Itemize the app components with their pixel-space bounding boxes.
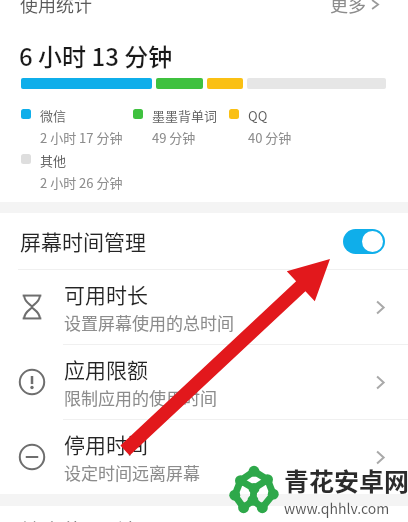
staticText: 40 分钟 — [248, 128, 292, 147]
staticText: 设定时间远离屏幕 — [64, 460, 200, 485]
staticText: 应用限额 — [64, 354, 148, 384]
staticText: 使用统计 — [20, 0, 92, 17]
staticText: 可用时长 — [64, 279, 148, 309]
staticText: 停用时间 — [64, 429, 148, 459]
button[interactable]: 更多 — [330, 0, 380, 17]
staticText: QQ — [248, 106, 268, 125]
staticText: 墨墨背单词 — [152, 106, 218, 125]
button[interactable]: 停用时间 — [0, 420, 408, 494]
staticText: 微信 — [40, 106, 67, 125]
staticText: 其他 — [40, 151, 67, 170]
button[interactable]: 应用限额 — [0, 345, 408, 419]
button[interactable]: Screen time management toggle — [343, 229, 385, 254]
staticText: 更多 — [330, 0, 366, 17]
staticText: 屏幕时间管理 — [20, 226, 146, 256]
staticText: 健康使用手机 — [20, 515, 146, 522]
staticText: 6 小时 13 分钟 — [19, 38, 173, 73]
staticText: 2 小时 17 分钟 — [40, 128, 123, 147]
button[interactable]: 可用时长 — [0, 270, 408, 344]
staticText: 青花安卓网 — [284, 462, 408, 498]
button[interactable]: 屏幕时间管理 — [0, 213, 408, 269]
staticText: 49 分钟 — [152, 128, 196, 147]
button[interactable]: 健康使用手机 — [0, 506, 408, 522]
staticText: 限制应用的使用时间 — [64, 385, 217, 410]
staticText: www.qhhlv.com — [284, 498, 390, 518]
button[interactable]: 使用统计 — [20, 0, 92, 17]
staticText: 设置屏幕使用的总时间 — [64, 310, 234, 335]
staticText: 2 小时 26 分钟 — [40, 173, 123, 192]
